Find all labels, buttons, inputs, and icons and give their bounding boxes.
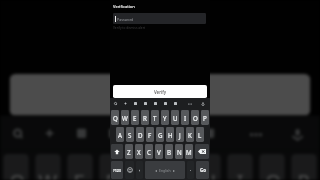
staticText: U [202,167,218,180]
staticText: X [137,148,141,156]
staticText: D [138,131,143,139]
staticText: R [106,167,118,180]
staticText: I [237,167,246,180]
button[interactable]: E [131,110,139,125]
staticText: E [133,114,137,122]
staticText: English [159,168,171,173]
staticText: S [128,131,132,139]
button[interactable]: L [196,127,204,142]
button[interactable]: Keyboard tool 2 [130,98,140,109]
button[interactable]: Keyboard tool 1 [32,116,64,151]
staticText: T [138,167,150,180]
button[interactable]: Keyboard tool 2 [64,116,96,151]
button[interactable]: Keyboard tool 8 [196,98,210,109]
button[interactable]: Y [163,154,189,180]
staticText: Verify [141,87,182,106]
button[interactable]: Password [113,13,206,24]
staticText: Go [200,167,206,173]
button[interactable]: Keyboard tool 3 [96,116,128,151]
button[interactable]: Keyboard tool 5 [160,98,170,109]
staticText: Y [163,114,167,122]
button[interactable]: , [136,161,143,179]
button[interactable]: Keyboard tool 5 [160,116,192,151]
button[interactable]: . [187,161,194,179]
button[interactable]: Space [145,161,185,179]
button[interactable]: F [146,127,154,142]
staticText: C [147,148,151,156]
button[interactable]: Emoji [125,161,134,179]
staticText: W [38,167,58,180]
staticText: Verify to dismiss alert [113,26,146,30]
staticText: A [118,131,122,139]
button[interactable]: Keyboard tool 3 [140,98,150,109]
button[interactable]: Keyboard tool 1 [120,98,130,109]
button[interactable]: H [166,127,174,142]
button[interactable]: W [35,154,61,180]
staticText: R [143,114,147,122]
button[interactable]: T [151,110,159,125]
button[interactable]: Q [111,110,119,125]
staticText: M [186,148,192,156]
staticText: W [122,114,128,122]
button[interactable]: V [155,144,163,159]
staticText: Password [117,17,134,22]
button[interactable]: D [136,127,144,142]
staticText: Verify [154,89,167,95]
button[interactable]: Y [161,110,169,125]
staticText: G [158,131,163,139]
button[interactable]: T [131,154,157,180]
button[interactable]: J [176,127,184,142]
button[interactable]: R [99,154,125,180]
button[interactable]: S [126,127,134,142]
button[interactable]: B [165,144,173,159]
button[interactable]: O [191,110,199,125]
button[interactable]: Verify [113,85,207,98]
button[interactable]: Keyboard tool 4 [128,116,160,151]
button[interactable]: C [145,144,153,159]
staticText: K [188,131,192,139]
button[interactable]: ?123 [111,161,123,179]
button[interactable]: Keyboard tool 4 [150,98,160,109]
button[interactable]: Go [196,161,209,179]
staticText: U [173,114,178,122]
button[interactable]: Keyboard tool 7 [184,98,196,109]
button[interactable]: E [67,154,93,180]
button[interactable]: X [135,144,143,159]
button[interactable]: K [186,127,194,142]
button[interactable]: Keyboard tool 8 [275,116,320,151]
button[interactable]: Keyboard tool 7 [237,116,275,151]
button[interactable]: Keyboard tool 0 [0,116,32,151]
button[interactable]: P [201,110,209,125]
button[interactable]: Keyboard tool 6 [170,98,180,109]
button[interactable]: Q [3,154,29,180]
staticText: L [198,131,202,139]
button[interactable]: Z [125,144,133,159]
staticText: , [139,166,141,173]
staticText: ?123 [113,168,121,173]
button[interactable]: G [156,127,164,142]
button[interactable]: Keyboard tool 0 [110,98,120,109]
staticText: J [179,131,181,139]
button[interactable]: Backspace [195,144,209,159]
button[interactable]: P [291,154,317,180]
button[interactable]: M [185,144,193,159]
button[interactable]: Keyboard tool 6 [192,116,224,151]
button[interactable]: W [121,110,129,125]
staticText: Q [113,114,118,122]
staticText: V [157,148,161,156]
button[interactable]: Verify [10,74,310,116]
button[interactable]: I [227,154,253,180]
button[interactable]: I [181,110,189,125]
button[interactable]: N [175,144,183,159]
button[interactable]: A [116,127,124,142]
staticText: Q [10,167,26,180]
staticText: I [184,114,187,122]
button[interactable]: U [195,154,221,180]
button[interactable]: O [259,154,285,180]
staticText: E [74,167,86,180]
staticText: . [190,166,192,173]
button[interactable]: Shift [111,144,123,159]
button[interactable]: R [141,110,149,125]
staticText: T [153,114,157,122]
button[interactable]: U [171,110,179,125]
